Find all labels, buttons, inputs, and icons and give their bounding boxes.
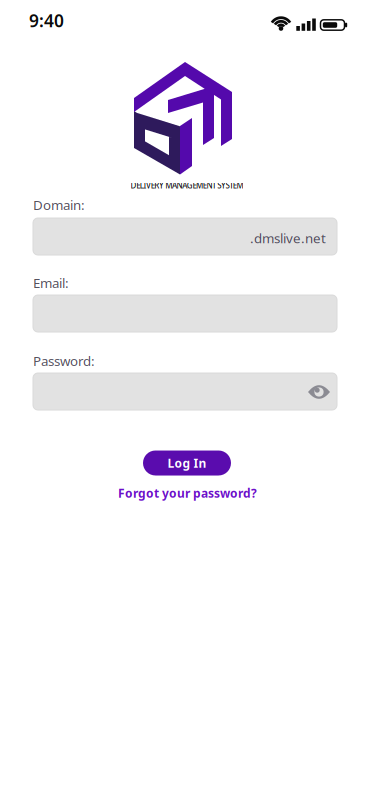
button[interactable]: Forgot your password? [118,485,257,501]
staticText: Password: [33,352,95,370]
button[interactable]: Domain [33,218,337,255]
button[interactable]: Log In [143,450,231,475]
staticText: DELIVERY MANAGEMENT SYSTEM [130,180,243,191]
staticText: Email: [33,274,69,292]
button[interactable]: Show password [304,381,334,403]
staticText: Domain: [33,196,85,214]
staticText: .dmslive.net [250,229,326,247]
staticText: Log In [167,455,206,471]
staticText: Forgot your password? [118,485,257,501]
staticText: 9:40 [29,9,64,32]
button[interactable]: Password [33,373,337,410]
